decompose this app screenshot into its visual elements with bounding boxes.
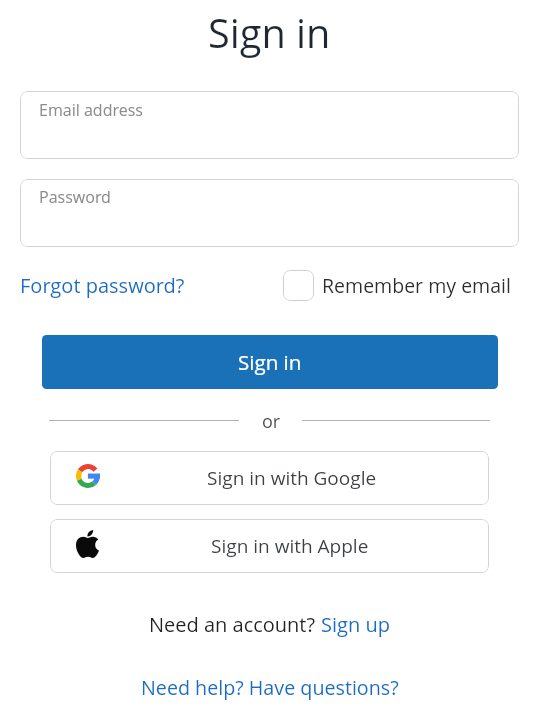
staticText: Sign in with Google <box>207 465 377 491</box>
staticText: Sign in <box>208 6 331 60</box>
button[interactable]: Password <box>20 179 519 247</box>
staticText: Need help? Have questions? <box>141 674 399 700</box>
staticText: or <box>262 409 281 429</box>
other: Remember my email checkbox <box>283 270 314 301</box>
button[interactable]: Sign in with Google <box>50 451 489 505</box>
staticText: Sign up <box>321 611 390 637</box>
button[interactable]: Sign in <box>42 335 498 389</box>
staticText: Forgot password? <box>20 272 185 299</box>
button[interactable]: Sign up <box>321 611 390 637</box>
button[interactable]: Need help? Have questions? <box>141 674 399 700</box>
staticText: Need an account? <box>149 611 321 637</box>
staticText: Sign in <box>238 348 302 376</box>
staticText: Sign in with Apple <box>211 533 369 559</box>
staticText: Password <box>39 186 111 208</box>
staticText: Email address <box>39 99 143 121</box>
button[interactable]: Email address <box>20 91 519 159</box>
staticText: Remember my email <box>322 272 511 299</box>
button[interactable]: Forgot password? <box>20 272 185 299</box>
button[interactable]: Sign in with Apple <box>50 519 489 573</box>
button[interactable]: Remember my email checkbox <box>283 270 511 301</box>
